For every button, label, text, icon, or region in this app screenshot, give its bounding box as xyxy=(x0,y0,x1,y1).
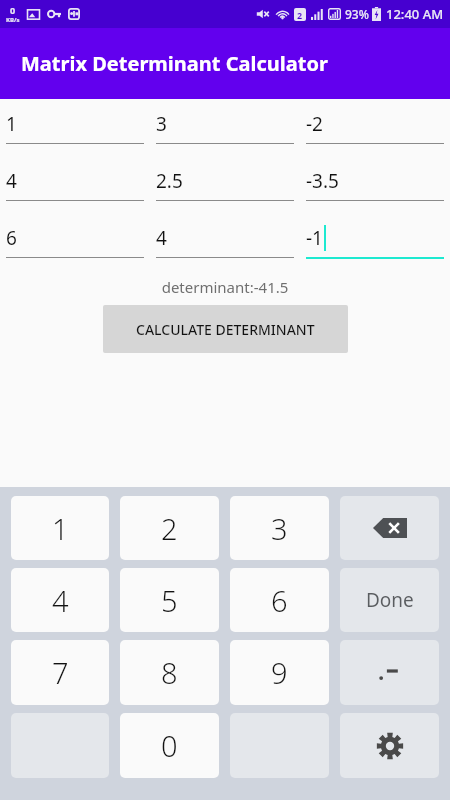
staticText: 1 xyxy=(52,509,69,548)
button[interactable]: -1 xyxy=(306,219,444,259)
button[interactable]: 0 xyxy=(120,713,219,778)
button[interactable]: 4 xyxy=(11,568,109,632)
button[interactable]: Dot and minus xyxy=(340,640,439,705)
button[interactable]: 3 xyxy=(230,496,329,560)
button[interactable]: Keyboard settings xyxy=(340,713,439,778)
button[interactable]: 2.5 xyxy=(156,162,294,201)
staticText: 3 xyxy=(156,111,167,137)
staticText: 12:40 AM xyxy=(386,5,444,23)
button[interactable]: 2 xyxy=(120,496,219,560)
staticText: 2.5 xyxy=(156,168,183,194)
button[interactable]: 1 xyxy=(6,105,144,144)
staticText: Done xyxy=(366,587,414,613)
staticText: KB/s xyxy=(6,16,20,24)
button[interactable]: 1 xyxy=(11,496,109,560)
staticText: 6 xyxy=(271,581,288,620)
staticText: -2 xyxy=(306,111,323,137)
button[interactable]: Backspace xyxy=(340,496,439,560)
staticText: 5 xyxy=(161,581,178,620)
staticText: -3.5 xyxy=(306,168,339,194)
staticText: 0 xyxy=(10,4,16,16)
button[interactable]: 4 xyxy=(6,162,144,201)
button[interactable]: 6 xyxy=(6,219,144,258)
staticText: 2 xyxy=(297,9,303,21)
staticText: Matrix Determinant Calculator xyxy=(21,50,328,77)
staticText: 4 xyxy=(6,168,17,194)
staticText: 9 xyxy=(271,653,288,692)
button[interactable]: 4 xyxy=(156,219,294,258)
button[interactable]: 3 xyxy=(156,105,294,144)
button[interactable]: 7 xyxy=(11,640,109,705)
staticText: 2 xyxy=(161,509,178,548)
staticText: 7 xyxy=(52,653,69,692)
staticText: 8 xyxy=(161,653,178,692)
button[interactable]: CALCULATE DETERMINANT xyxy=(103,305,348,353)
staticText: 6 xyxy=(6,225,17,251)
staticText: 0 xyxy=(161,726,178,765)
button[interactable]: 6 xyxy=(230,568,329,632)
staticText: -1 xyxy=(306,225,323,251)
staticText: determinant:-41.5 xyxy=(0,277,450,297)
button[interactable]: 5 xyxy=(120,568,219,632)
button[interactable]: -3.5 xyxy=(306,162,444,201)
staticText: 4 xyxy=(156,225,167,251)
staticText: 4 xyxy=(52,581,69,620)
button[interactable]: 9 xyxy=(230,640,329,705)
button[interactable]: -2 xyxy=(306,105,444,144)
button[interactable]: 8 xyxy=(120,640,219,705)
button[interactable]: Done xyxy=(340,568,439,632)
staticText: 93% xyxy=(345,6,369,22)
staticText: 1 xyxy=(6,111,17,137)
staticText: 3 xyxy=(271,509,288,548)
staticText: CALCULATE DETERMINANT xyxy=(136,320,315,339)
